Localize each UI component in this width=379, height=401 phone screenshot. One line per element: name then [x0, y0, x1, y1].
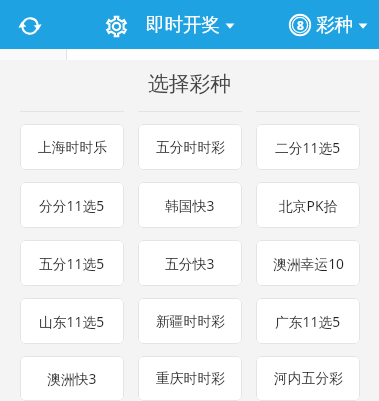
staticText: 山东11选5 — [39, 312, 105, 331]
staticText: 选择彩种 — [0, 71, 379, 97]
staticText: 河内五分彩 — [274, 370, 343, 387]
button[interactable]: 分分11选5 — [20, 182, 124, 228]
button[interactable]: 新疆时时彩 — [138, 298, 242, 344]
button[interactable]: Settings — [99, 9, 133, 43]
staticText: 五分快3 — [165, 254, 215, 273]
staticText: 五分11选5 — [39, 254, 105, 273]
button[interactable]: 二分11选5 — [256, 124, 360, 170]
button[interactable]: 河内五分彩 — [256, 356, 360, 401]
staticText: 广东11选5 — [275, 312, 341, 331]
staticText: 新疆时时彩 — [156, 313, 225, 330]
button[interactable]: Refresh — [13, 9, 47, 43]
staticText: 重庆时时彩 — [156, 370, 225, 387]
staticText: 北京PK拾 — [279, 196, 338, 215]
staticText: 韩国快3 — [165, 196, 215, 215]
staticText: 即时开奖 — [146, 13, 220, 36]
button[interactable]: 五分快3 — [138, 240, 242, 286]
button[interactable]: 五分11选5 — [20, 240, 124, 286]
staticText: 8 — [297, 17, 304, 33]
button[interactable]: 上海时时乐 — [20, 124, 124, 170]
staticText: 五分时时彩 — [156, 139, 225, 156]
staticText: 澳洲快3 — [47, 369, 97, 388]
staticText: 上海时时乐 — [38, 139, 107, 156]
button[interactable]: 北京PK拾 — [256, 182, 360, 228]
staticText: 分分11选5 — [39, 196, 105, 215]
staticText: 澳洲幸运10 — [273, 254, 344, 273]
staticText: 彩种 — [316, 13, 353, 36]
button[interactable]: 澳洲幸运10 — [256, 240, 360, 286]
staticText: 二分11选5 — [275, 138, 341, 157]
button[interactable]: 广东11选5 — [256, 298, 360, 344]
button[interactable]: 五分时时彩 — [138, 124, 242, 170]
button[interactable]: 重庆时时彩 — [138, 356, 242, 401]
button[interactable]: 山东11选5 — [20, 298, 124, 344]
button[interactable]: 澳洲快3 — [20, 356, 124, 401]
button[interactable]: 即时开奖 — [142, 0, 239, 49]
button[interactable]: 8 — [287, 0, 370, 49]
button[interactable]: 韩国快3 — [138, 182, 242, 228]
